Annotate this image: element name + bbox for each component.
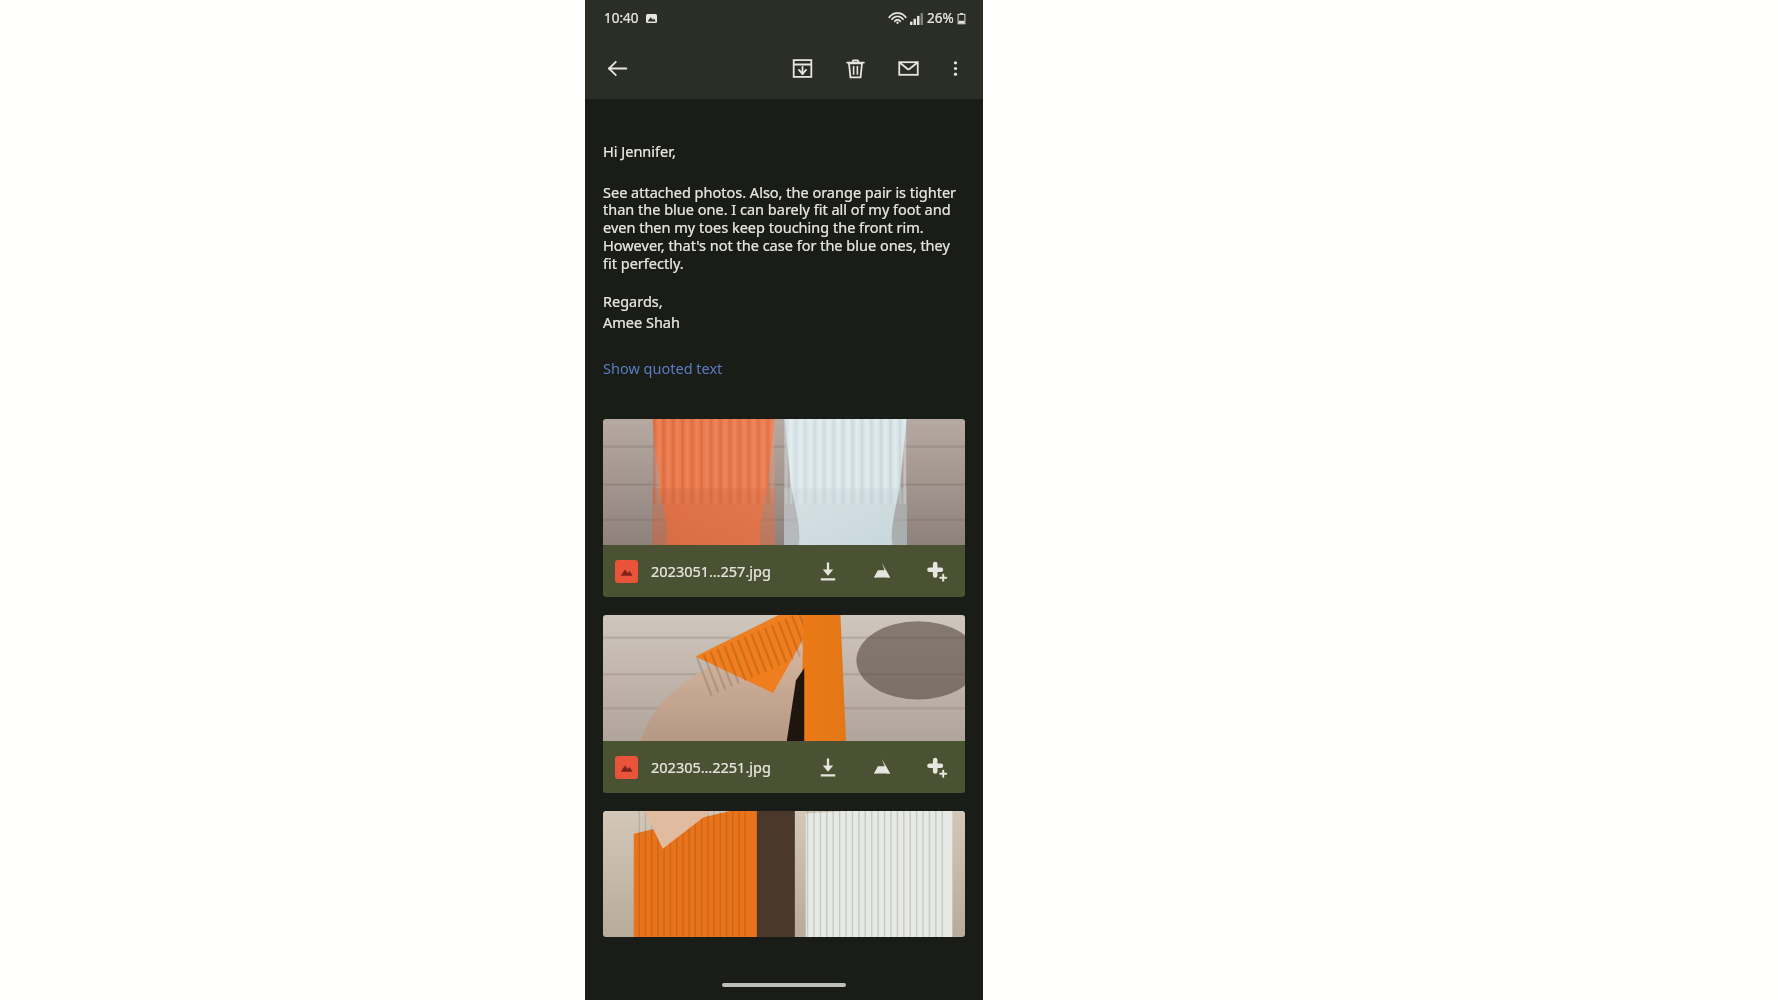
staticText: 202305…2251.jpg xyxy=(651,757,771,777)
button[interactable]: Mark unread xyxy=(886,46,930,90)
staticText: Amee Shah xyxy=(603,312,680,332)
staticText: 2023051…257.jpg xyxy=(651,561,771,581)
button[interactable]: Delete xyxy=(833,46,877,90)
staticText: 10:40 xyxy=(604,9,639,27)
button[interactable]: 202305…2251.jpg xyxy=(603,615,965,793)
button[interactable]: Save to Photos xyxy=(919,750,953,784)
button[interactable]: More options xyxy=(935,48,975,88)
button[interactable]: Save to Photos xyxy=(919,554,953,588)
button[interactable] xyxy=(603,811,965,937)
staticText: 26% xyxy=(927,9,954,27)
staticText: Regards, xyxy=(603,291,663,311)
button[interactable]: Save to Drive xyxy=(865,750,899,784)
button[interactable]: Back xyxy=(595,46,639,90)
staticText: Hi Jennifer, xyxy=(603,141,676,161)
staticText: Show quoted text xyxy=(603,358,723,378)
button[interactable]: 2023051…257.jpg xyxy=(603,419,965,597)
button[interactable]: Show quoted text xyxy=(603,358,723,378)
button[interactable]: Archive xyxy=(780,46,824,90)
staticText: See attached photos. Also, the orange pa… xyxy=(603,182,965,273)
button[interactable]: Download xyxy=(811,554,845,588)
button[interactable]: Download xyxy=(811,750,845,784)
button[interactable]: Save to Drive xyxy=(865,554,899,588)
